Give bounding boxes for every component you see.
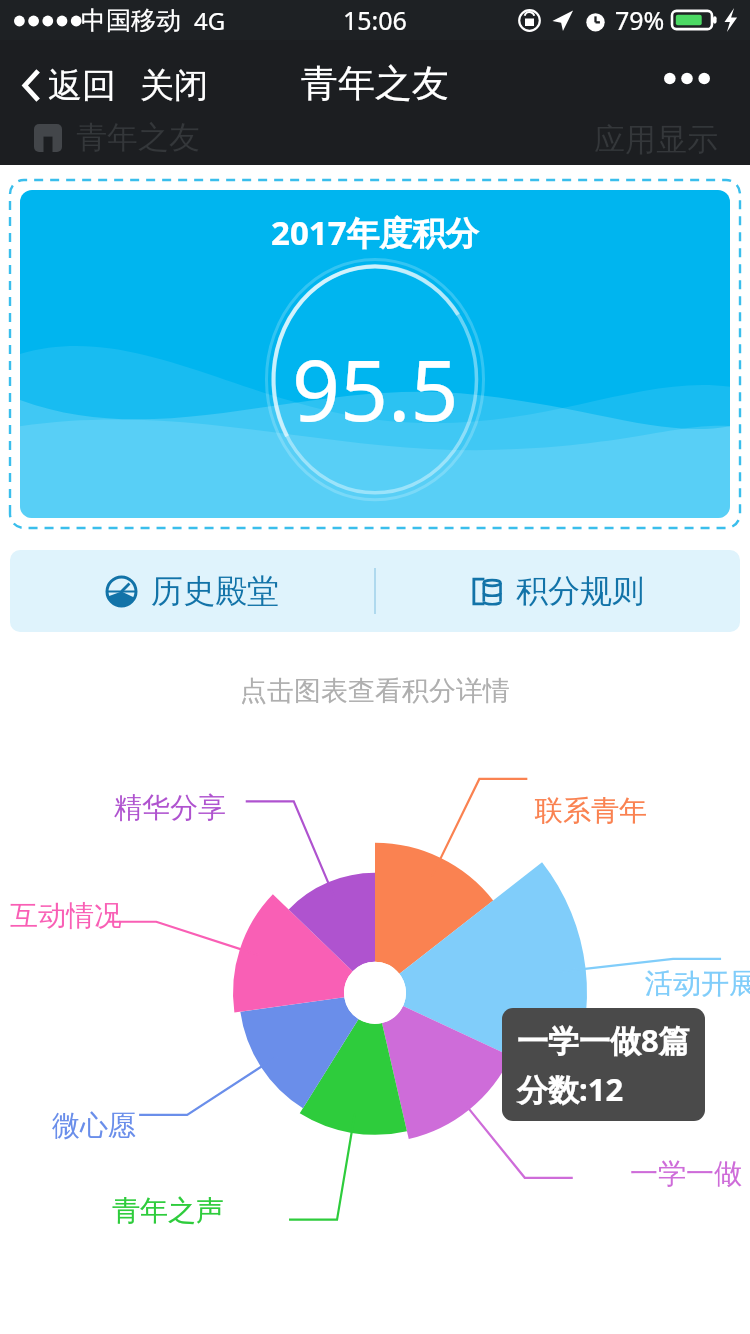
- staticText: 79%: [615, 3, 665, 37]
- staticText: 精华分享: [114, 790, 226, 825]
- staticText: 15:06: [343, 3, 407, 37]
- button[interactable]: 2017年度积分: [20, 190, 730, 518]
- staticText: 一学一做8篇: [517, 1019, 690, 1061]
- staticText: 联系青年: [535, 793, 647, 828]
- staticText: 互动情况: [10, 898, 122, 933]
- staticText: 返回: [48, 64, 116, 107]
- staticText: 微心愿: [52, 1108, 136, 1143]
- staticText: 积分规则: [516, 571, 644, 611]
- button[interactable]: 返回: [14, 58, 124, 113]
- staticText: 应用显示: [594, 120, 718, 159]
- button[interactable]: More options: [650, 58, 724, 99]
- staticText: 分数:12: [517, 1068, 624, 1110]
- staticText: 2017年度积分: [271, 210, 479, 255]
- staticText: 中国移动: [81, 5, 181, 36]
- button[interactable]: 历史殿堂: [10, 550, 374, 632]
- button[interactable]: 积分规则: [376, 550, 740, 632]
- staticText: 点击图表查看积分详情: [0, 674, 750, 708]
- button[interactable]: Score breakdown rose chart: [0, 708, 750, 1334]
- staticText: 活动开展: [645, 966, 750, 1001]
- staticText: 关闭: [140, 64, 208, 107]
- staticText: 青年之声: [112, 1193, 224, 1228]
- staticText: 青年之友: [76, 118, 200, 157]
- button[interactable]: 关闭: [132, 58, 216, 113]
- staticText: 历史殿堂: [151, 571, 279, 611]
- staticText: 4G: [194, 4, 226, 37]
- staticText: 青年之友: [301, 60, 449, 107]
- staticText: 95.5: [292, 331, 459, 445]
- staticText: 一学一做: [630, 1156, 742, 1191]
